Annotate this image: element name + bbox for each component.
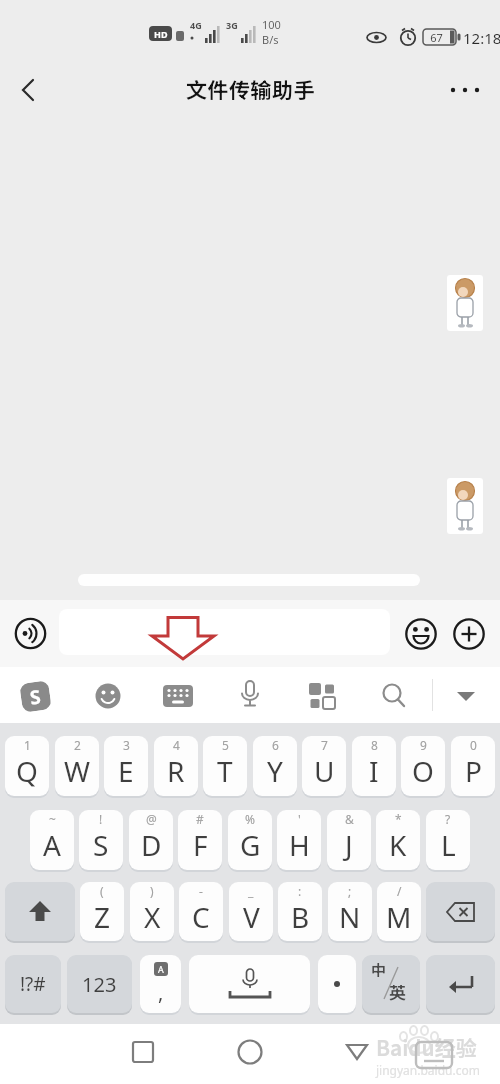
button[interactable]: S xyxy=(19,680,51,712)
button[interactable] xyxy=(234,679,266,711)
staticText: N xyxy=(339,898,361,936)
staticText: 2 xyxy=(74,737,81,753)
button[interactable]: / xyxy=(377,882,421,943)
staticText: ; xyxy=(348,883,352,899)
button[interactable]: 1 xyxy=(5,736,49,798)
button[interactable]: ( xyxy=(80,882,124,943)
button[interactable]: 123 xyxy=(67,955,132,1015)
button[interactable]: 0 xyxy=(451,736,495,798)
staticText: L xyxy=(441,826,456,864)
button[interactable] xyxy=(426,955,495,1015)
button[interactable] xyxy=(450,680,482,712)
button[interactable]: * xyxy=(376,810,420,872)
button[interactable] xyxy=(5,882,75,943)
button[interactable]: _ xyxy=(229,882,273,943)
staticText: 英 xyxy=(389,983,406,1003)
staticText: 中 xyxy=(371,961,387,979)
staticText: jingyan.baidu.com xyxy=(376,1062,480,1078)
button[interactable] xyxy=(337,1032,377,1072)
staticText: T xyxy=(217,752,233,790)
button[interactable]: 中 xyxy=(362,955,420,1015)
button[interactable]: 5 xyxy=(203,736,247,798)
staticText: 12:18 xyxy=(463,28,500,48)
button[interactable] xyxy=(440,70,490,110)
button[interactable]: 3 xyxy=(104,736,148,798)
staticText: : xyxy=(298,883,302,899)
staticText: K xyxy=(389,826,407,864)
button[interactable]: 9 xyxy=(401,736,445,798)
button[interactable]: ! xyxy=(79,810,123,872)
staticText: , xyxy=(158,979,164,1006)
button[interactable]: ' xyxy=(277,810,321,872)
staticText: ' xyxy=(298,811,301,827)
button[interactable]: - xyxy=(179,882,223,943)
button[interactable] xyxy=(378,680,410,712)
button[interactable]: ? xyxy=(426,810,470,872)
staticText: ) xyxy=(150,883,154,899)
button[interactable]: 6 xyxy=(253,736,297,798)
staticText: M xyxy=(386,898,412,936)
button[interactable]: 2 xyxy=(55,736,99,798)
staticText: HD xyxy=(154,28,168,40)
staticText: J xyxy=(345,826,353,864)
staticText: 4G xyxy=(190,19,202,31)
button[interactable] xyxy=(447,478,483,534)
button[interactable] xyxy=(452,617,486,651)
button[interactable]: ) xyxy=(130,882,174,943)
button[interactable]: @ xyxy=(129,810,173,872)
button[interactable]: # xyxy=(178,810,222,872)
staticText: F xyxy=(193,826,208,864)
staticText: * xyxy=(395,811,402,827)
button[interactable]: ; xyxy=(328,882,372,943)
button[interactable] xyxy=(13,616,48,651)
button[interactable]: A xyxy=(140,955,181,1015)
staticText: 6 xyxy=(272,737,279,753)
button[interactable]: % xyxy=(228,810,272,872)
staticText: C xyxy=(192,898,210,936)
staticText: !?# xyxy=(20,971,46,997)
staticText: Z xyxy=(94,898,111,936)
button[interactable] xyxy=(306,680,338,712)
button[interactable]: 8 xyxy=(352,736,396,798)
button[interactable] xyxy=(404,617,438,651)
staticText: 8 xyxy=(371,737,378,753)
button[interactable] xyxy=(230,1032,270,1072)
staticText: D xyxy=(141,826,162,864)
button[interactable] xyxy=(426,882,495,943)
button[interactable]: 7 xyxy=(302,736,346,798)
button[interactable] xyxy=(123,1032,163,1072)
staticText: 9 xyxy=(420,737,427,753)
staticText: A xyxy=(158,963,164,975)
button[interactable]: : xyxy=(278,882,322,943)
button[interactable]: 4 xyxy=(154,736,198,798)
button[interactable] xyxy=(318,955,356,1015)
button[interactable]: !?# xyxy=(5,955,61,1015)
staticText: 123 xyxy=(82,971,117,998)
staticText: @ xyxy=(146,811,157,827)
staticText: Q xyxy=(16,752,38,790)
staticText: - xyxy=(199,883,203,899)
staticText: ~ xyxy=(49,811,56,827)
staticText: 文件传输助手 xyxy=(186,78,315,103)
button[interactable] xyxy=(447,275,483,331)
staticText: 1 xyxy=(24,737,31,753)
button[interactable] xyxy=(162,680,194,712)
button[interactable] xyxy=(189,955,310,1015)
button[interactable] xyxy=(59,609,390,655)
staticText: # xyxy=(196,811,204,827)
staticText: 3G xyxy=(226,19,238,31)
staticText: R xyxy=(167,752,185,790)
staticText: X xyxy=(144,898,161,936)
staticText: _ xyxy=(248,883,254,899)
staticText: A xyxy=(43,826,61,864)
staticText: H xyxy=(289,826,310,864)
button[interactable] xyxy=(92,680,124,712)
staticText: / xyxy=(397,883,402,899)
button[interactable] xyxy=(8,70,48,110)
staticText: S xyxy=(93,826,109,864)
staticText: 67 xyxy=(423,30,450,45)
button[interactable]: & xyxy=(327,810,371,872)
staticText: 100 xyxy=(262,17,281,32)
button[interactable]: ~ xyxy=(30,810,74,872)
staticText: E xyxy=(118,752,134,790)
